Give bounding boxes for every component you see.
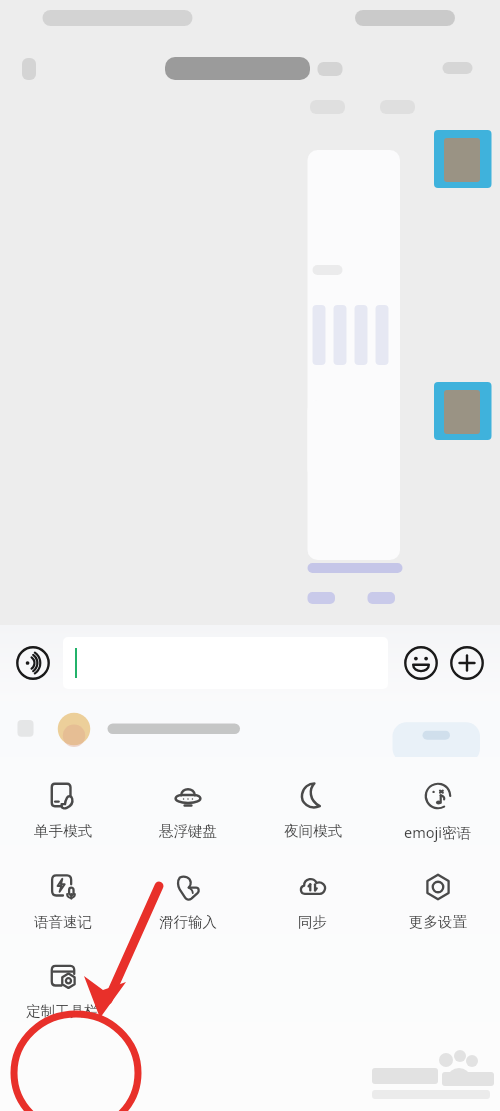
button[interactable]: More bbox=[448, 644, 486, 682]
staticText: emoji密语 bbox=[404, 822, 471, 842]
staticText: 滑行输入 bbox=[159, 913, 217, 931]
button[interactable]: 滑行输入 bbox=[125, 870, 250, 931]
staticText: 悬浮键盘 bbox=[159, 822, 217, 840]
staticText: 单手模式 bbox=[34, 822, 92, 840]
staticText: 更多设置 bbox=[409, 913, 467, 931]
button[interactable]: Emoji bbox=[402, 644, 440, 682]
button[interactable]: 更多设置 bbox=[375, 870, 500, 931]
staticText: 同步 bbox=[298, 913, 327, 931]
button[interactable] bbox=[63, 637, 388, 689]
staticText: 夜间模式 bbox=[284, 822, 342, 840]
button[interactable]: Voice input bbox=[14, 644, 52, 682]
button[interactable]: 定制工具栏 bbox=[0, 959, 125, 1020]
staticText: 定制工具栏 bbox=[26, 1002, 99, 1020]
button[interactable]: emoji密语 bbox=[375, 779, 500, 842]
button[interactable]: 同步 bbox=[250, 870, 375, 931]
button[interactable]: 夜间模式 bbox=[250, 779, 375, 840]
staticText: 语音速记 bbox=[34, 913, 92, 931]
button[interactable]: 语音速记 bbox=[0, 870, 125, 931]
button[interactable]: 单手模式 bbox=[0, 779, 125, 840]
button[interactable]: 悬浮键盘 bbox=[125, 779, 250, 840]
